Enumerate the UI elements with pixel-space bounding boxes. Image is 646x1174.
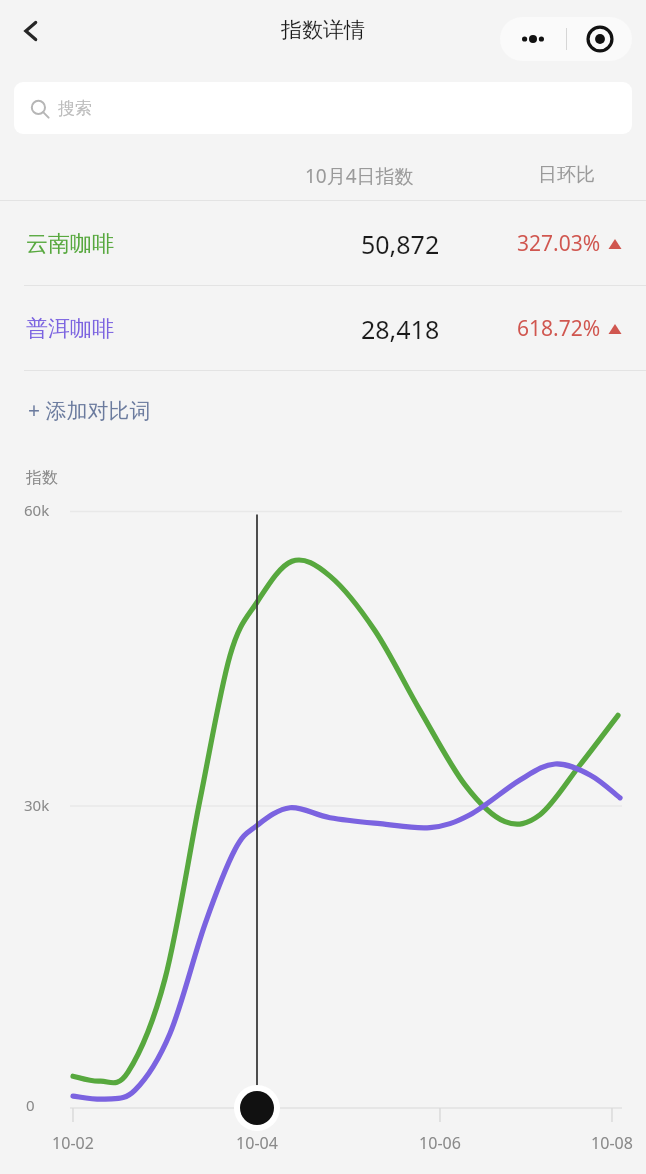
staticText: 10月4日指数 [305,163,414,189]
staticText: 50,872 [361,227,440,261]
staticText: 10-04 [236,1132,278,1154]
staticText: 60k [24,500,50,520]
button[interactable]: Back [6,6,56,56]
staticText: + 添加对比词 [28,396,151,425]
button[interactable]: 普洱咖啡 [0,286,646,371]
staticText: 0 [26,1095,35,1115]
staticText: 10-08 [591,1132,633,1154]
staticText: 云南咖啡 [26,230,114,258]
staticText: 日环比 [538,163,595,187]
staticText: 搜索 [58,98,92,119]
staticText: 指数详情 [281,17,365,43]
staticText: 10-06 [419,1132,461,1154]
staticText: 327.03% [517,229,601,258]
staticText: 指数 [26,468,58,488]
button[interactable]: + 添加对比词 [14,380,151,440]
button[interactable]: More [500,17,566,61]
staticText: 618.72% [517,314,601,343]
button[interactable]: 云南咖啡 [0,201,646,286]
button[interactable]: 搜索 [14,82,632,134]
staticText: 普洱咖啡 [26,315,114,343]
staticText: 10-02 [52,1132,94,1154]
staticText: 30k [24,795,50,815]
staticText: 28,418 [361,312,440,346]
button[interactable]: Close mini program [567,17,632,61]
